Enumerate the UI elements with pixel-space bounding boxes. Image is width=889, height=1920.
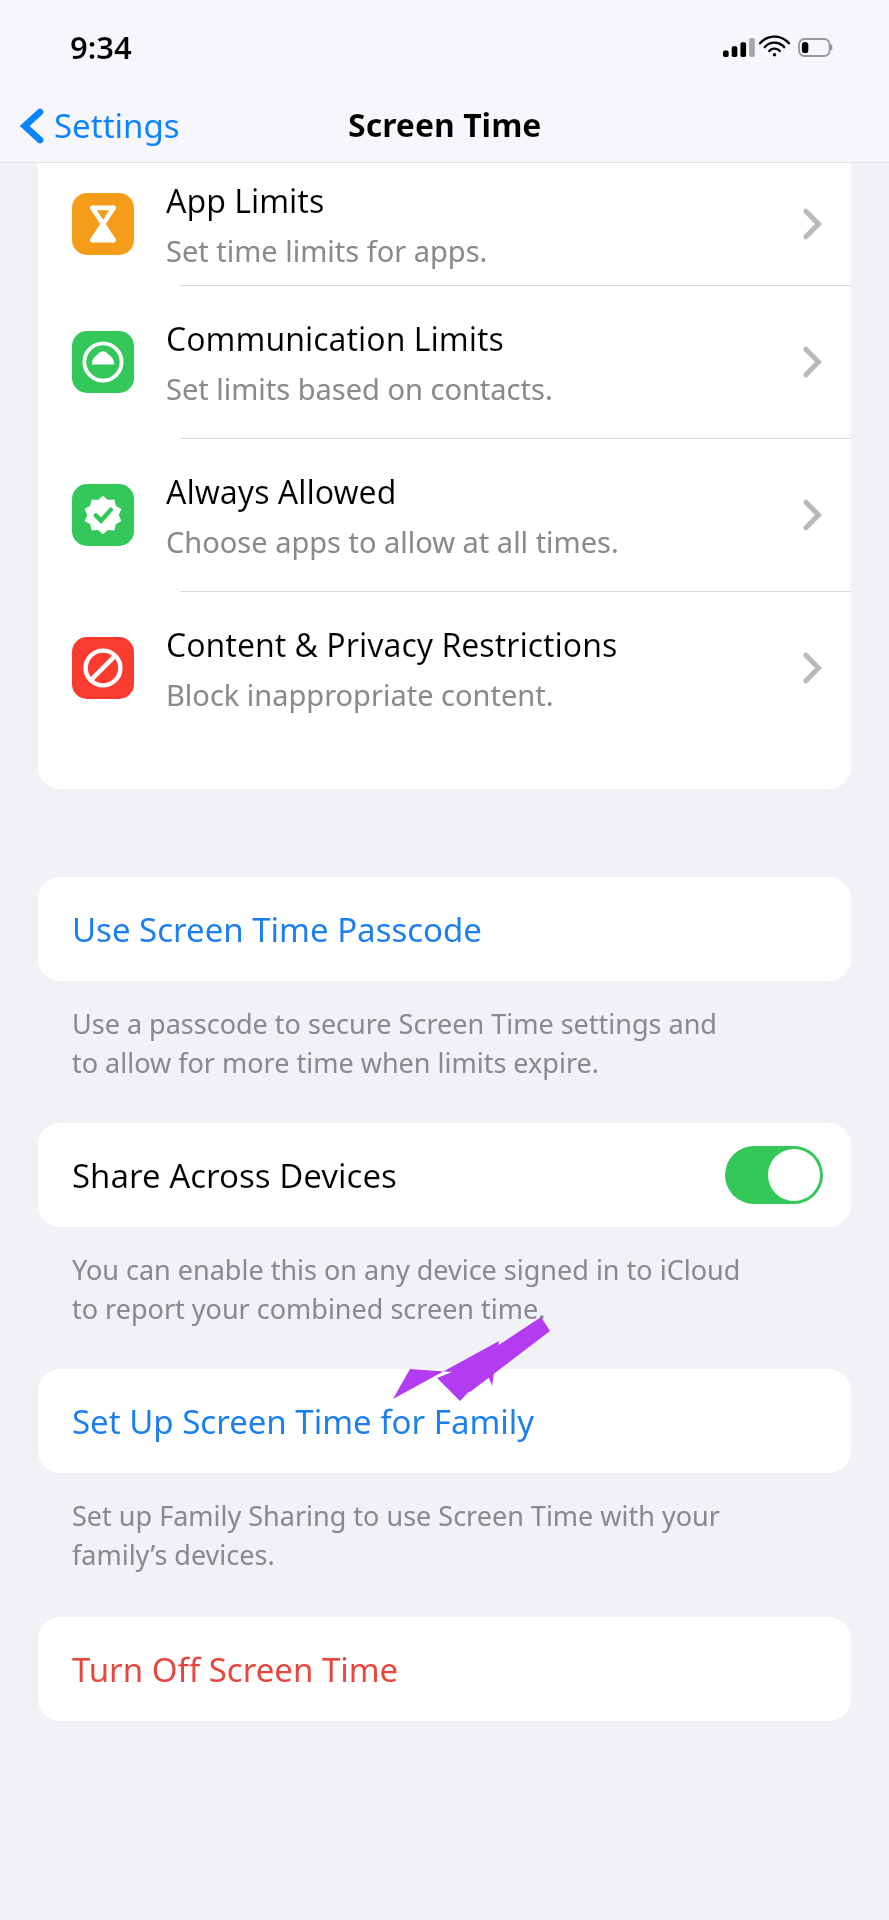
staticText: You can enable this on any device signed… (72, 1251, 741, 1327)
staticText: Screen Time (348, 103, 542, 147)
button[interactable]: Use Screen Time Passcode (38, 877, 851, 981)
button[interactable]: Turn Off Screen Time (38, 1617, 851, 1721)
staticText: Content & Privacy Restrictions (166, 623, 618, 667)
other: Share Across Devices toggle, on (725, 1146, 823, 1204)
staticText: Set up Family Sharing to use Screen Time… (72, 1497, 720, 1573)
staticText: Set Up Screen Time for Family (72, 1399, 535, 1444)
button[interactable]: Set Up Screen Time for Family (38, 1369, 851, 1473)
staticText: Share Across Devices (72, 1153, 397, 1198)
button[interactable]: Communication Limits (38, 286, 851, 438)
button[interactable]: Always Allowed (38, 439, 851, 591)
staticText: Use Screen Time Passcode (72, 907, 482, 952)
button[interactable]: Settings (0, 97, 196, 154)
staticText: Block inappropriate content. (166, 675, 554, 714)
staticText: Set time limits for apps. (166, 231, 488, 270)
staticText: Always Allowed (166, 470, 397, 514)
staticText: Set limits based on contacts. (166, 369, 553, 408)
staticText: Choose apps to allow at all times. (166, 522, 619, 561)
staticText: Communication Limits (166, 317, 504, 361)
button[interactable]: Share Across Devices (38, 1123, 851, 1227)
staticText: 9:34 (70, 26, 132, 68)
staticText: Settings (54, 103, 180, 148)
button[interactable]: App Limits (38, 163, 851, 285)
button[interactable]: Content & Privacy Restrictions (38, 592, 851, 744)
staticText: Use a passcode to secure Screen Time set… (72, 1005, 717, 1081)
staticText: App Limits (166, 179, 325, 223)
staticText: Turn Off Screen Time (72, 1647, 399, 1692)
